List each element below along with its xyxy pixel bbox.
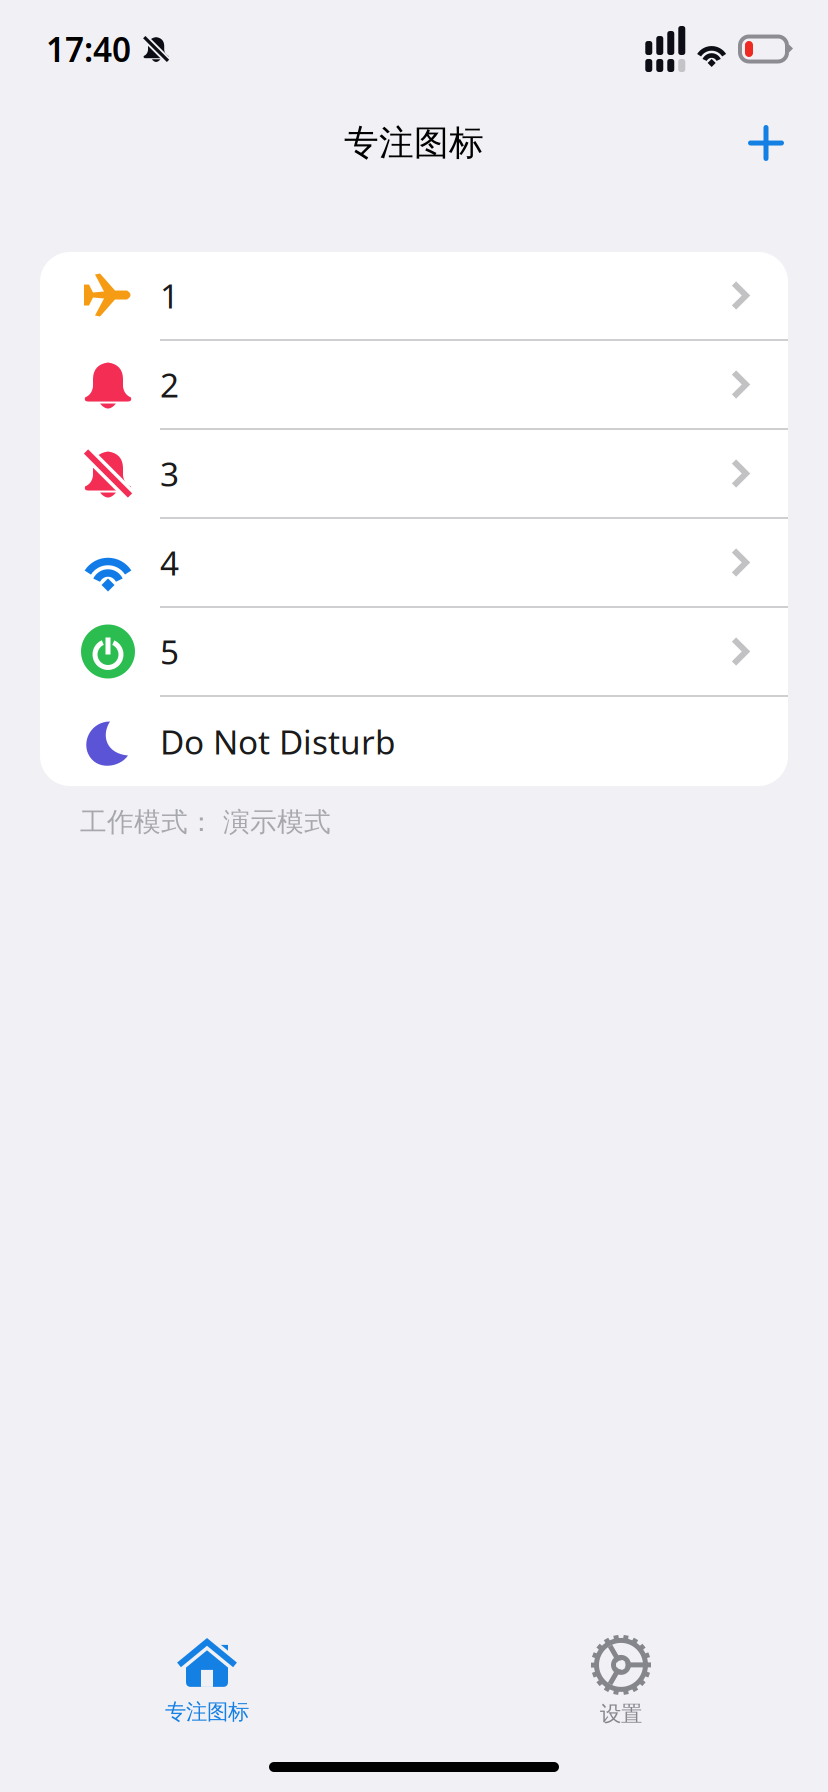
- staticText: 1: [160, 273, 179, 318]
- staticText: 2: [160, 362, 179, 407]
- staticText: 设置: [600, 1701, 642, 1727]
- button[interactable]: Do Not Disturb: [40, 697, 788, 786]
- button[interactable]: 专注图标: [0, 1624, 414, 1736]
- button[interactable]: 3: [40, 430, 788, 519]
- button[interactable]: 2: [40, 341, 788, 430]
- button[interactable]: 1: [40, 252, 788, 341]
- staticText: 工作模式： 演示模式: [80, 806, 331, 838]
- button[interactable]: 设置: [414, 1624, 828, 1736]
- button[interactable]: 5: [40, 608, 788, 697]
- staticText: 专注图标: [344, 122, 484, 164]
- staticText: Do Not Disturb: [160, 719, 396, 764]
- staticText: 4: [160, 540, 179, 585]
- button[interactable]: Add: [738, 115, 794, 171]
- staticText: 17:40: [46, 27, 131, 71]
- staticText: 专注图标: [165, 1699, 249, 1725]
- staticText: 5: [160, 629, 179, 674]
- button[interactable]: 4: [40, 519, 788, 608]
- staticText: 3: [160, 451, 179, 496]
